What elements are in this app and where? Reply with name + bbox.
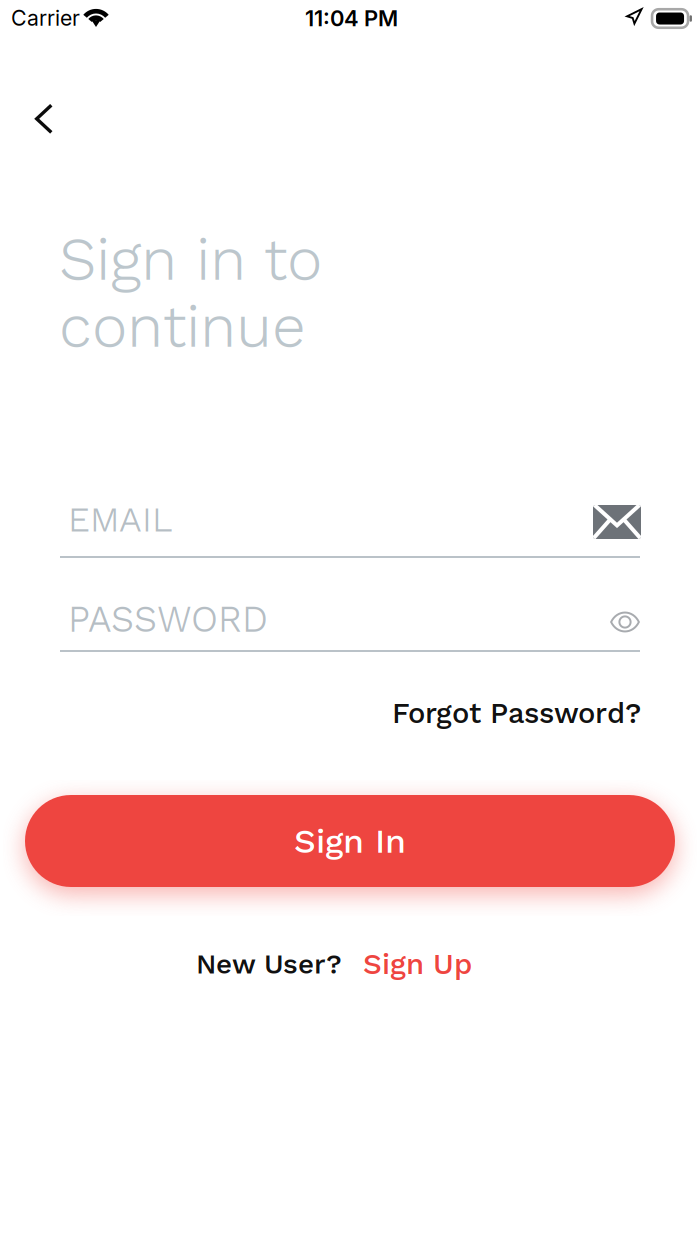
staticText: Sign in to <box>59 224 322 294</box>
staticText: continue <box>59 291 306 361</box>
staticText: EMAIL <box>68 499 173 540</box>
staticText: Carrier <box>11 5 80 31</box>
button[interactable]: Show password <box>599 598 651 646</box>
staticText: PASSWORD <box>68 598 268 641</box>
staticText: Forgot Password? <box>392 696 641 730</box>
button[interactable]: Forgot Password? <box>381 693 641 733</box>
button[interactable]: Sign Up <box>342 947 472 981</box>
staticText: Sign In <box>294 821 406 861</box>
button[interactable]: Back <box>12 87 76 151</box>
staticText: Sign Up <box>363 947 472 981</box>
staticText: 11:04 PM <box>305 5 398 32</box>
button[interactable]: Sign In <box>25 795 675 887</box>
staticText: New User? <box>196 948 342 980</box>
